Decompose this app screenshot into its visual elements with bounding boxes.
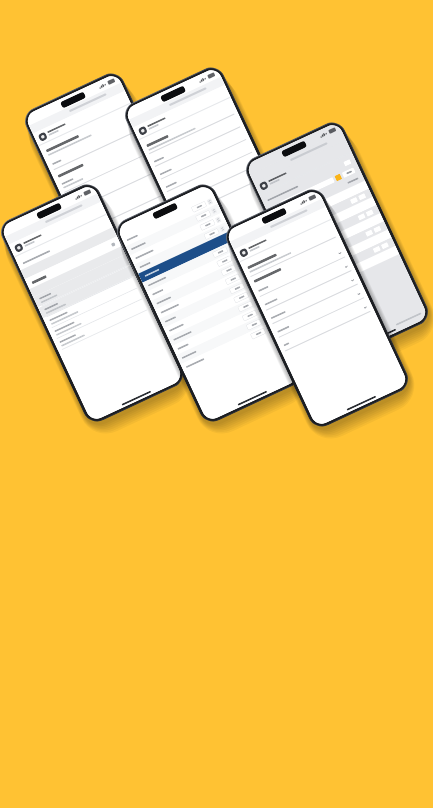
button[interactable]: App logo xyxy=(13,242,24,253)
button[interactable]: Row action xyxy=(291,215,380,263)
button[interactable]: Row action xyxy=(384,250,393,258)
button[interactable] xyxy=(242,310,258,321)
button[interactable]: Stepper xyxy=(253,298,260,305)
button[interactable]: App logo xyxy=(137,125,148,136)
button[interactable] xyxy=(155,133,250,181)
button[interactable]: Row action xyxy=(280,190,369,238)
button[interactable]: Row action xyxy=(358,193,366,200)
button[interactable]: Row action xyxy=(361,221,370,229)
button[interactable]: Stepper xyxy=(137,223,227,272)
button[interactable]: Stepper xyxy=(257,307,264,314)
button[interactable] xyxy=(250,131,346,183)
button[interactable] xyxy=(49,279,139,325)
button[interactable] xyxy=(259,262,355,312)
button[interactable]: App logo xyxy=(238,247,249,258)
button[interactable]: Row action xyxy=(295,223,384,271)
button[interactable]: Stepper xyxy=(150,250,240,299)
button[interactable]: App logo xyxy=(37,131,48,142)
button[interactable]: Stepper xyxy=(249,289,256,296)
button[interactable] xyxy=(199,219,215,231)
button[interactable]: Action button xyxy=(342,167,356,178)
button[interactable] xyxy=(47,121,143,172)
button[interactable]: Stepper xyxy=(261,316,268,323)
button[interactable] xyxy=(66,162,162,213)
button[interactable] xyxy=(39,257,129,303)
button[interactable] xyxy=(54,290,144,336)
button[interactable] xyxy=(272,289,368,340)
button[interactable] xyxy=(212,246,228,258)
button[interactable] xyxy=(20,227,117,279)
button[interactable]: Stepper xyxy=(240,270,247,278)
button[interactable]: Stepper xyxy=(236,261,243,269)
button[interactable]: Action button xyxy=(213,281,231,294)
button[interactable]: Stepper xyxy=(219,225,226,233)
button[interactable]: Action button xyxy=(132,277,152,291)
button[interactable]: Action button xyxy=(67,189,83,201)
button[interactable] xyxy=(266,276,361,326)
button[interactable]: App logo xyxy=(258,180,269,191)
button[interactable]: Stepper xyxy=(163,278,252,326)
button[interactable]: Stepper xyxy=(180,314,269,363)
button[interactable]: Stepper xyxy=(265,325,273,332)
button[interactable]: Row action xyxy=(381,242,389,249)
button[interactable]: Stepper xyxy=(154,260,244,308)
button[interactable] xyxy=(191,201,207,213)
button[interactable] xyxy=(57,142,153,195)
button[interactable]: Colour swatch xyxy=(334,173,342,181)
button[interactable]: Row action xyxy=(303,239,392,287)
button[interactable]: Action button xyxy=(274,210,286,219)
button[interactable] xyxy=(59,300,150,347)
button[interactable] xyxy=(75,182,172,234)
button[interactable]: Stepper xyxy=(133,214,223,263)
button[interactable] xyxy=(29,238,117,287)
button[interactable]: Stepper xyxy=(159,269,248,317)
button[interactable] xyxy=(230,198,326,250)
button[interactable]: Row action xyxy=(373,226,382,233)
button[interactable] xyxy=(220,264,237,276)
button[interactable]: Stepper xyxy=(175,305,265,354)
button[interactable] xyxy=(278,303,374,353)
button[interactable] xyxy=(195,210,211,222)
button[interactable]: Stepper xyxy=(215,216,222,224)
button[interactable]: Row action xyxy=(357,213,366,221)
button[interactable] xyxy=(280,177,335,207)
button[interactable] xyxy=(253,248,349,299)
button[interactable]: Stepper xyxy=(211,207,218,215)
button[interactable] xyxy=(229,282,245,294)
button[interactable]: Row action xyxy=(365,229,373,237)
button[interactable] xyxy=(237,301,253,312)
button[interactable] xyxy=(143,233,230,281)
button[interactable]: Action button xyxy=(285,204,298,213)
button[interactable]: Action button xyxy=(113,287,131,300)
button[interactable]: Menu xyxy=(343,159,352,166)
button[interactable] xyxy=(149,120,244,168)
button[interactable]: Row action xyxy=(299,231,388,279)
button[interactable]: Row action xyxy=(307,247,396,295)
button[interactable]: Stepper xyxy=(171,296,261,345)
button[interactable]: Row action xyxy=(362,201,370,209)
button[interactable] xyxy=(5,193,101,245)
button[interactable]: Stepper xyxy=(206,198,213,205)
button[interactable] xyxy=(29,246,125,297)
button[interactable]: Stepper xyxy=(167,287,256,336)
button[interactable] xyxy=(216,255,232,267)
button[interactable]: Stepper xyxy=(244,279,251,287)
button[interactable]: Stepper xyxy=(125,196,214,245)
button[interactable] xyxy=(29,82,125,134)
button[interactable] xyxy=(44,268,134,314)
button[interactable] xyxy=(129,76,225,128)
button[interactable] xyxy=(246,319,262,330)
button[interactable]: Stepper xyxy=(129,205,218,254)
button[interactable]: Row action xyxy=(288,207,377,254)
button[interactable] xyxy=(204,228,220,240)
button[interactable]: Row action xyxy=(373,246,381,253)
button[interactable] xyxy=(167,158,262,207)
button[interactable]: Row action xyxy=(369,217,378,225)
button[interactable] xyxy=(233,291,249,303)
button[interactable] xyxy=(250,328,266,340)
